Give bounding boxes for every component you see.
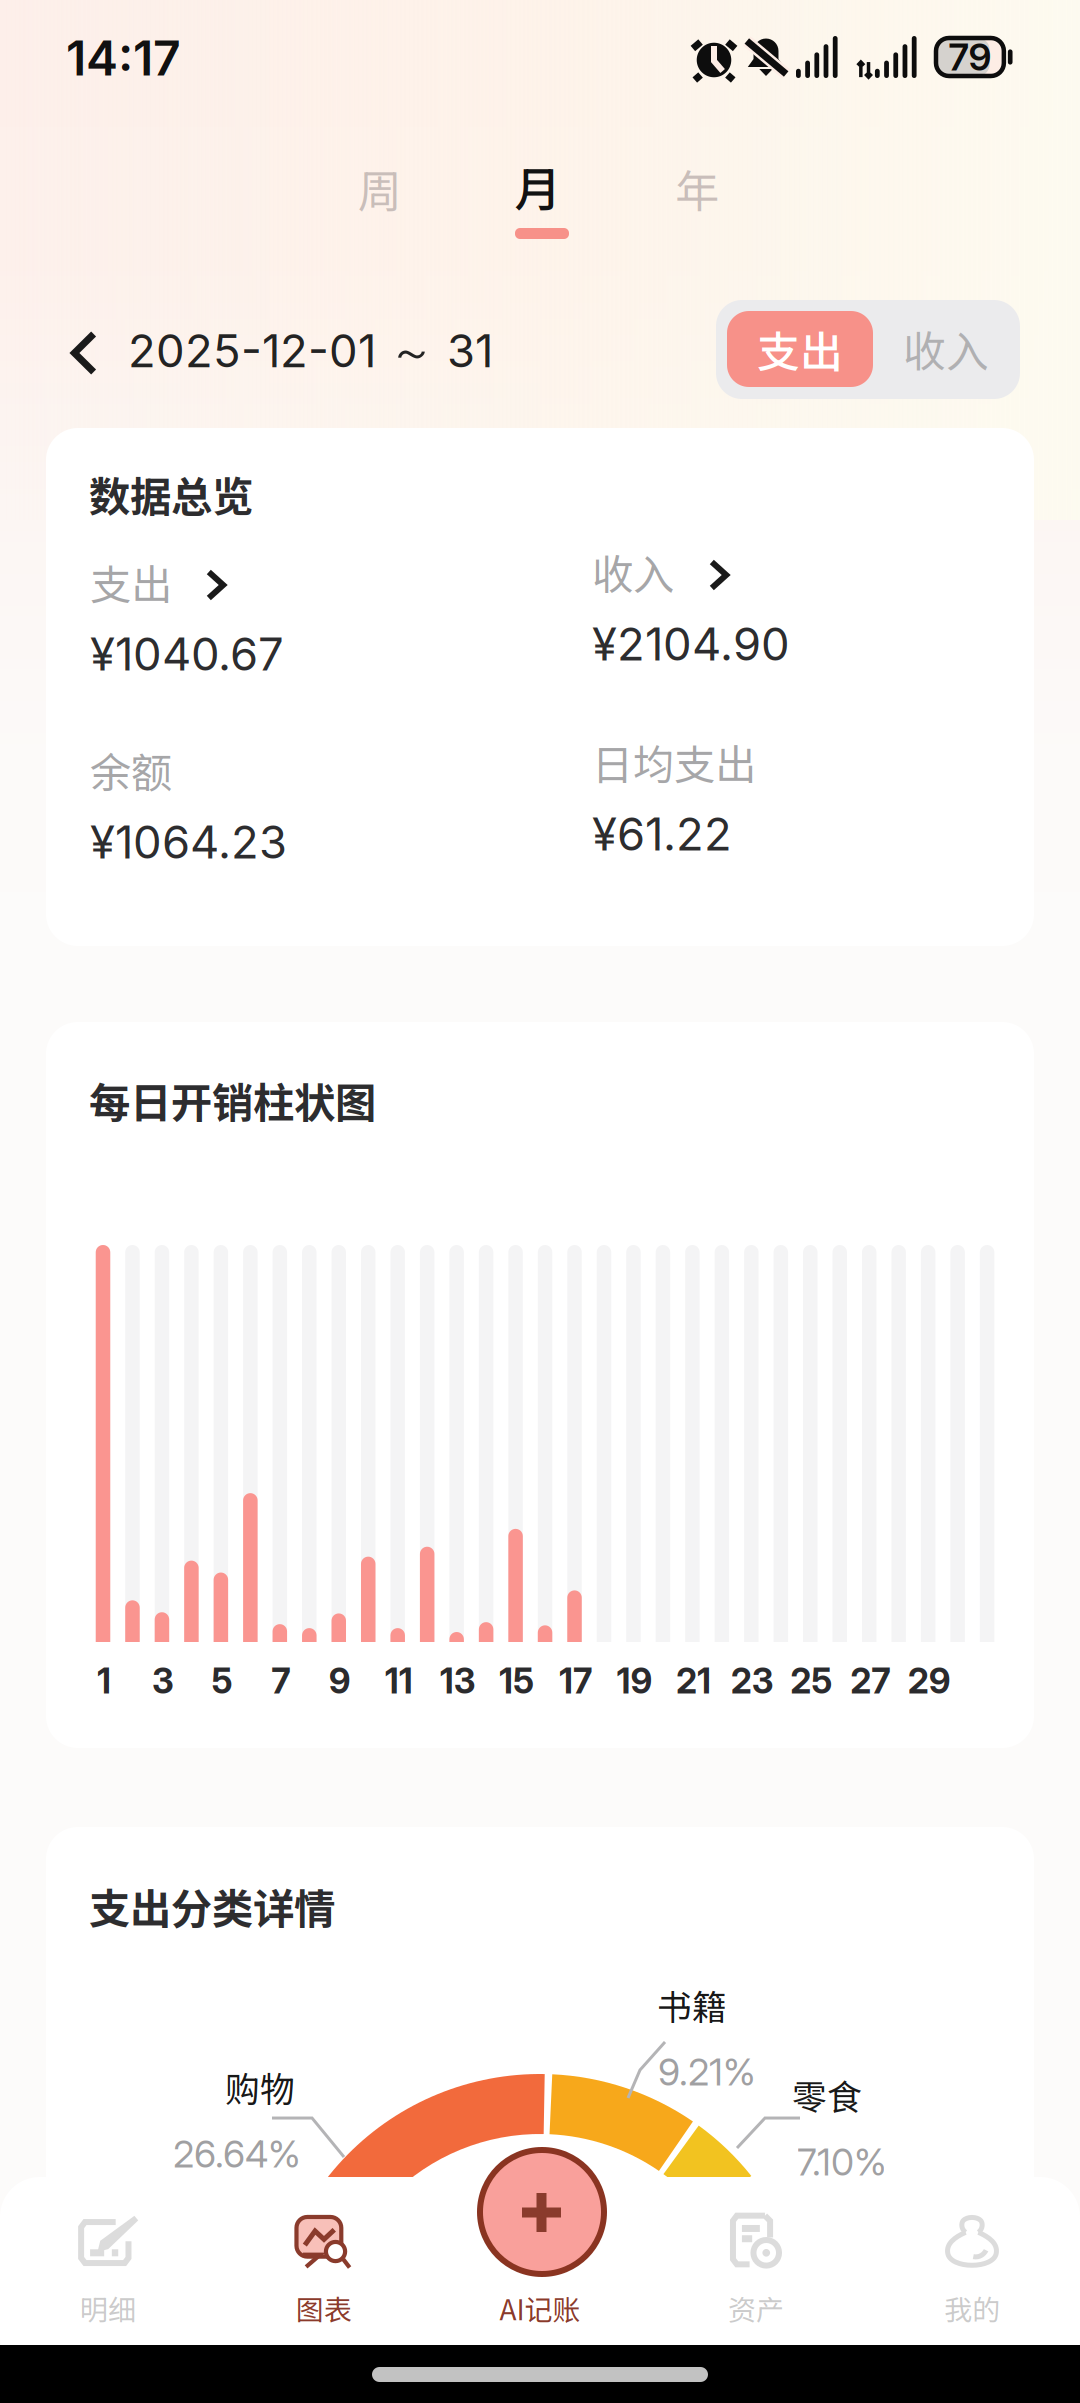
staticText: 明细	[80, 2288, 136, 2328]
button[interactable]: 支出	[716, 300, 862, 376]
staticText: 支出	[757, 318, 843, 380]
staticText: 日均支出	[592, 732, 756, 792]
staticText: 2025-12-01 ～ 31	[128, 323, 493, 381]
staticText: 29	[908, 1660, 951, 1702]
staticText: 14:17	[66, 29, 181, 87]
staticText: 收入	[903, 318, 989, 380]
staticText: 支出	[90, 552, 172, 612]
button[interactable]: 我的	[0, 0, 1080, 2403]
staticText: 3	[152, 1660, 174, 1702]
staticText: 9.21%	[658, 2049, 756, 2095]
staticText: 余额	[90, 740, 172, 800]
staticText: ¥1040.67	[90, 627, 284, 681]
staticText: 11	[385, 1660, 413, 1702]
staticText: 零食	[792, 2070, 862, 2120]
button[interactable]: 月	[0, 0, 140, 60]
button[interactable]: 年	[0, 0, 140, 60]
button[interactable]: 周	[0, 0, 140, 60]
staticText: 7.10%	[797, 2139, 887, 2185]
staticText: 25	[790, 1660, 832, 1702]
staticText: 周	[358, 156, 402, 220]
button[interactable]: 图表	[0, 0, 1080, 2403]
staticText: 年	[675, 156, 719, 220]
staticText: 支出分类详情	[89, 1876, 335, 1936]
staticText: ¥61.22	[592, 807, 732, 861]
staticText: 27	[850, 1660, 890, 1702]
staticText: 购物	[225, 2062, 295, 2112]
staticText: 图表	[296, 2288, 352, 2328]
button[interactable]: 收入	[716, 300, 862, 376]
staticText: ¥2104.90	[592, 617, 790, 671]
staticText: 9	[329, 1660, 351, 1702]
button[interactable]: 明细	[0, 0, 1080, 2403]
button[interactable]: 2025-12-01 ～ 31	[0, 0, 640, 110]
staticText: 月	[514, 152, 561, 220]
staticText: AI记账	[499, 2288, 580, 2328]
staticText: 1	[97, 1660, 111, 1702]
staticText: 7	[271, 1660, 290, 1702]
staticText: 数据总览	[89, 464, 253, 524]
staticText: 23	[731, 1660, 774, 1702]
staticText: 13	[440, 1660, 476, 1702]
staticText: 19	[616, 1660, 652, 1702]
button[interactable]: AI记账	[0, 0, 1080, 2403]
staticText: 26.64%	[173, 2131, 301, 2177]
staticText: 每日开销柱状图	[89, 1070, 376, 1130]
staticText: 5	[211, 1660, 232, 1702]
staticText: 我的	[944, 2288, 1000, 2328]
staticText: 收入	[592, 542, 674, 602]
staticText: 资产	[728, 2288, 784, 2328]
staticText: ¥1064.23	[90, 815, 287, 869]
staticText: 79	[948, 34, 991, 80]
staticText: 17	[559, 1660, 592, 1702]
staticText: 15	[499, 1660, 534, 1702]
staticText: 书籍	[657, 1980, 727, 2030]
button[interactable]: 资产	[0, 0, 1080, 2403]
staticText: 21	[676, 1660, 711, 1702]
